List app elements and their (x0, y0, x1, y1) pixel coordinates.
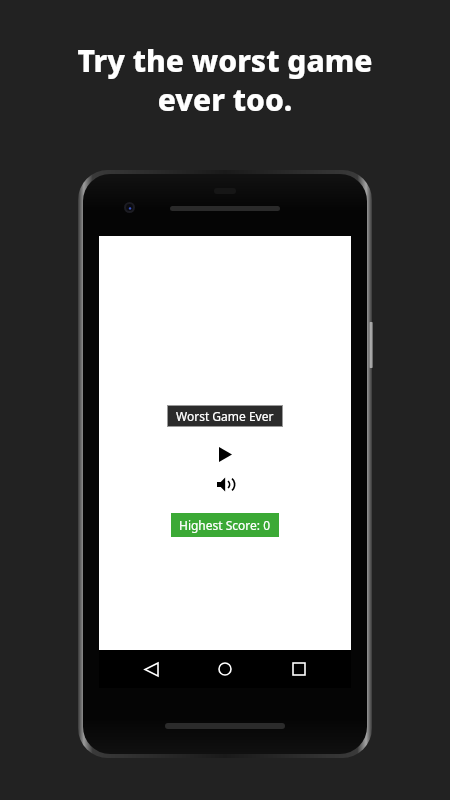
button[interactable]: Sound (212, 473, 238, 495)
button[interactable]: Highest Score: 0 (171, 513, 279, 537)
button[interactable]: Back (129, 650, 173, 688)
staticText: Try the worst game ever too. (77, 40, 373, 119)
button[interactable]: Worst Game Ever (167, 405, 283, 427)
button[interactable]: Home (203, 650, 247, 688)
staticText: Worst Game Ever (176, 408, 274, 424)
button[interactable]: Play (212, 443, 238, 465)
staticText: Highest Score: 0 (179, 517, 271, 533)
button[interactable]: Recent apps (277, 650, 321, 688)
